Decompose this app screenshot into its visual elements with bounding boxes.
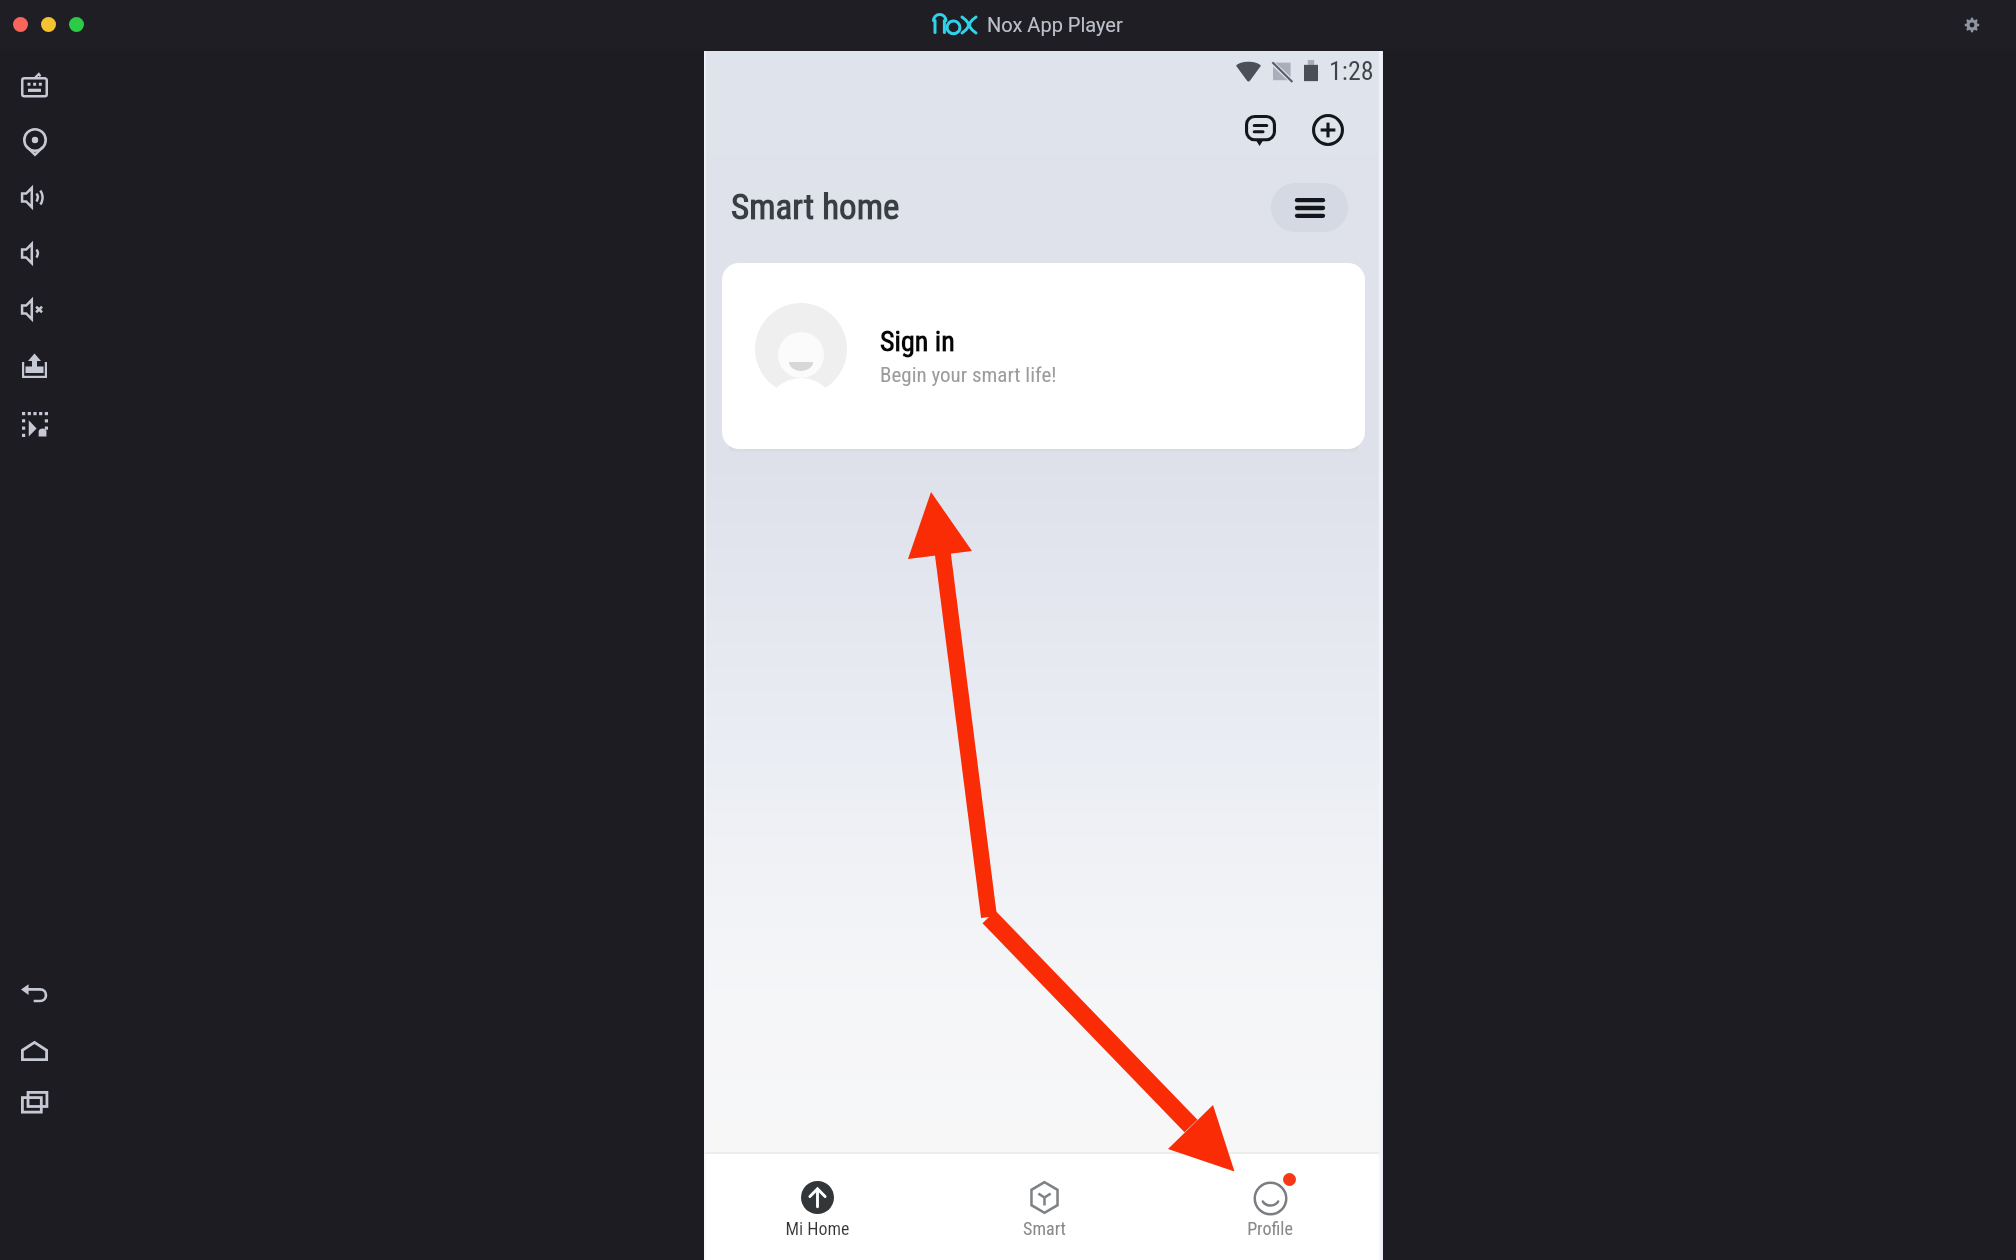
button[interactable]: Keyboard [6, 61, 63, 109]
button[interactable]: Volume up [6, 173, 63, 221]
button[interactable]: Back [6, 969, 63, 1017]
button[interactable]: Home [6, 1027, 63, 1075]
button[interactable]: Recents [6, 1078, 63, 1126]
button[interactable]: Add device [1306, 108, 1350, 152]
button[interactable]: Mute [6, 285, 63, 333]
button[interactable]: Close [13, 17, 28, 32]
button[interactable]: Maximize [69, 17, 84, 32]
button[interactable]: Messages [1238, 108, 1282, 152]
staticText: Begin your smart life! [880, 363, 1057, 388]
button[interactable]: Settings [1959, 12, 1985, 38]
button[interactable]: Sign in [722, 263, 1365, 449]
staticText: Profile [1247, 1218, 1293, 1239]
button[interactable]: Menu [1271, 183, 1348, 232]
staticText: Nox App Player [987, 13, 1123, 36]
button[interactable]: Install APK [6, 341, 63, 389]
button[interactable]: Minimize [41, 17, 56, 32]
button[interactable]: Macro [6, 400, 63, 448]
button[interactable]: Volume down [6, 229, 63, 277]
staticText: 1:28 [1329, 56, 1374, 86]
button[interactable]: Profile [1157, 1154, 1383, 1260]
staticText: Smart home [731, 187, 900, 228]
button[interactable]: Location [6, 118, 63, 166]
staticText: Sign in [880, 325, 955, 358]
button[interactable]: Mi Home [704, 1154, 931, 1260]
button[interactable]: Smart [931, 1154, 1157, 1260]
staticText: Mi Home [785, 1218, 850, 1239]
staticText: Smart [1023, 1218, 1066, 1239]
